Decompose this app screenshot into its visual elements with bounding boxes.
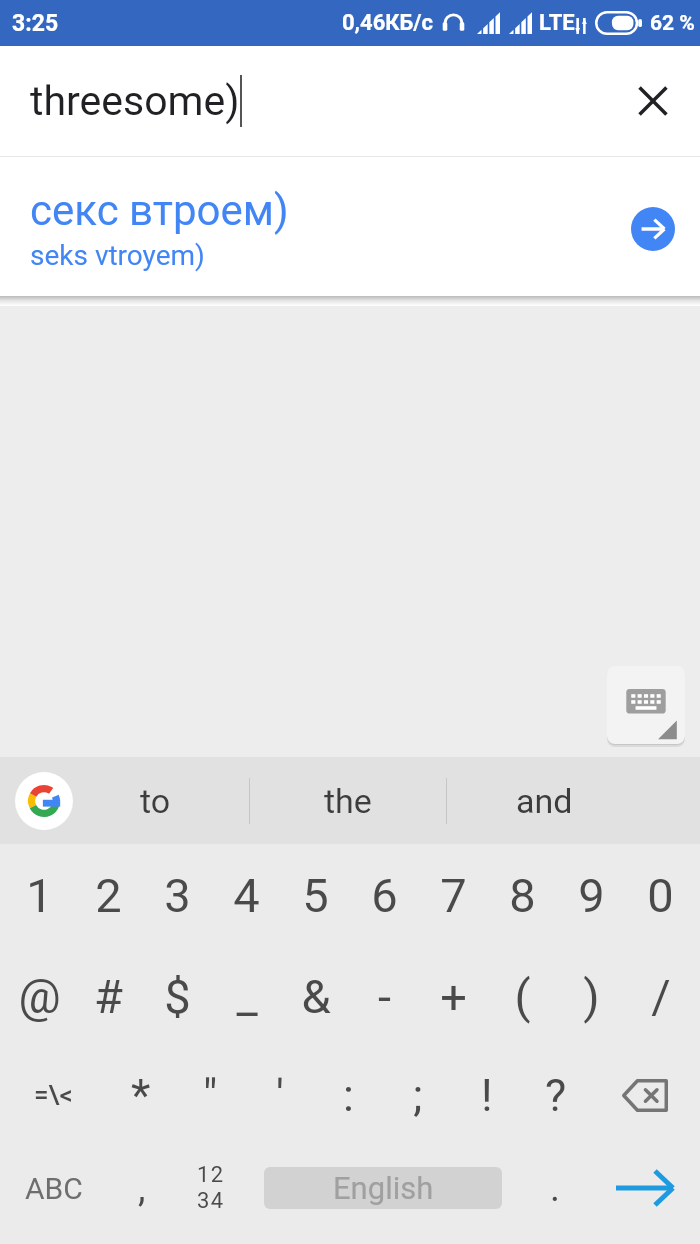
staticText: : — [343, 1069, 354, 1122]
staticText: 3 — [164, 868, 191, 923]
staticText: " — [203, 1069, 218, 1122]
button[interactable]: =\< — [0, 1046, 106, 1144]
staticText: 9 — [578, 868, 605, 923]
staticText: ! — [481, 1069, 493, 1122]
button[interactable]: English — [264, 1167, 502, 1209]
staticText: LTE — [539, 10, 575, 36]
staticText: 1 — [26, 868, 53, 923]
staticText: - — [378, 969, 391, 1024]
staticText: 0 — [647, 868, 674, 923]
button[interactable]: @ — [5, 947, 74, 1046]
staticText: seks vtroyem) — [30, 239, 205, 272]
button[interactable]: & — [281, 947, 350, 1046]
button[interactable]: Show keyboard — [607, 666, 685, 744]
button[interactable]: 2 — [74, 844, 143, 947]
staticText: & — [301, 969, 331, 1024]
button[interactable]: _ — [212, 947, 281, 1046]
button[interactable]: / — [626, 947, 695, 1046]
button[interactable]: + — [419, 947, 488, 1046]
staticText: ' — [276, 1069, 284, 1122]
staticText: to — [140, 781, 171, 821]
staticText: 2 — [95, 868, 122, 923]
staticText: 3:25 — [12, 10, 59, 37]
button[interactable]: the — [249, 757, 446, 844]
button[interactable]: ' — [245, 1046, 314, 1144]
button[interactable]: 1 — [5, 844, 74, 947]
staticText: 6 — [371, 868, 398, 923]
staticText: 4 — [233, 868, 260, 923]
button[interactable]: 0 — [626, 844, 695, 947]
staticText: =\< — [34, 1080, 73, 1110]
button[interactable]: ? — [521, 1046, 590, 1144]
button[interactable]: 9 — [557, 844, 626, 947]
button[interactable]: Enter — [590, 1144, 700, 1244]
button[interactable]: ABC — [0, 1144, 108, 1244]
staticText: the — [324, 781, 372, 821]
button[interactable]: 4 — [212, 844, 281, 947]
staticText: . — [550, 1166, 561, 1211]
button[interactable]: $ — [143, 947, 212, 1046]
button[interactable]: Google — [15, 772, 73, 830]
staticText: , — [138, 1166, 146, 1211]
staticText: _ — [236, 969, 258, 1024]
staticText: 8 — [509, 868, 536, 923]
staticText: / — [651, 969, 671, 1024]
button[interactable]: , — [108, 1144, 176, 1244]
staticText: # — [94, 969, 123, 1024]
staticText: 0,46КБ/c — [342, 10, 433, 36]
staticText: 12 — [197, 1162, 225, 1188]
button[interactable]: 6 — [350, 844, 419, 947]
staticText: ABC — [25, 1171, 83, 1206]
button[interactable]: 8 — [488, 844, 557, 947]
staticText: 7 — [440, 868, 467, 923]
staticText: threesome) — [30, 77, 240, 125]
staticText: ) — [583, 969, 600, 1024]
button[interactable]: 7 — [419, 844, 488, 947]
staticText: ? — [545, 1069, 567, 1122]
staticText: $ — [164, 969, 191, 1024]
button[interactable]: : — [314, 1046, 383, 1144]
button[interactable]: 5 — [281, 844, 350, 947]
button[interactable]: 12 — [176, 1144, 245, 1244]
button[interactable]: and — [446, 757, 643, 844]
button[interactable]: ) — [557, 947, 626, 1046]
button[interactable]: Clear — [625, 73, 681, 129]
staticText: 62 % — [650, 11, 695, 36]
button[interactable]: to — [61, 757, 249, 844]
staticText: * — [131, 1069, 151, 1122]
button[interactable]: # — [74, 947, 143, 1046]
button[interactable]: Translate — [631, 207, 675, 251]
button[interactable]: секс втроем) — [0, 157, 700, 296]
staticText: + — [440, 969, 467, 1024]
button[interactable]: Backspace — [590, 1046, 700, 1144]
button[interactable]: 3 — [143, 844, 212, 947]
button[interactable]: " — [176, 1046, 245, 1144]
staticText: English — [333, 1170, 434, 1206]
button[interactable]: ( — [488, 947, 557, 1046]
button[interactable]: . — [521, 1144, 590, 1244]
staticText: and — [516, 781, 573, 821]
staticText: ; — [413, 1069, 423, 1122]
button[interactable]: ! — [452, 1046, 521, 1144]
staticText: 5 — [302, 868, 329, 923]
button[interactable]: - — [350, 947, 419, 1046]
button[interactable]: ; — [383, 1046, 452, 1144]
staticText: ( — [514, 969, 531, 1024]
staticText: секс втроем) — [30, 186, 289, 235]
staticText: @ — [18, 969, 61, 1024]
staticText: 34 — [197, 1188, 225, 1214]
button[interactable]: * — [106, 1046, 176, 1144]
